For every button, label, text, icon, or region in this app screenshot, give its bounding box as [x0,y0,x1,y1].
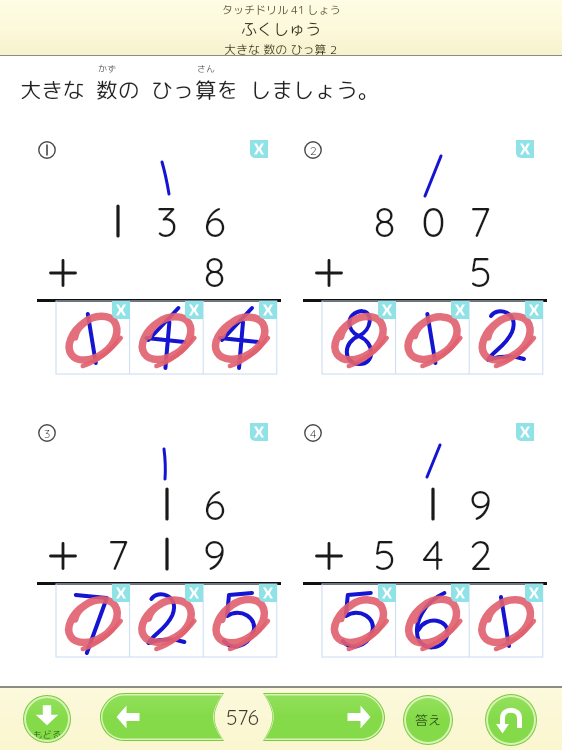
staticText: 2 [469,529,492,580]
button[interactable]: Next page [263,693,385,741]
staticText: 5 [373,529,396,580]
staticText: を [217,75,239,105]
staticText: 7 [107,529,129,580]
staticText: 6 [203,479,226,530]
button[interactable]: Clear this digit [185,301,203,319]
staticText: 9 [469,479,492,530]
button[interactable]: Clear this digit [250,423,268,441]
button[interactable]: Clear this digit [525,584,543,602]
staticText: ひっ [151,75,195,105]
staticText: 答え [415,711,442,729]
staticText: の [118,75,140,105]
staticText: 算 [195,75,217,105]
button[interactable]: Clear this digit [112,301,130,319]
staticText: ふくしゅう [241,18,322,40]
staticText: しましょう。 [250,75,380,105]
staticText: 2 [310,143,317,158]
button[interactable]: Show answer [406,698,450,742]
staticText: 大きな [20,75,85,105]
staticText: 0 [421,196,446,247]
button[interactable]: Clear this digit [516,140,534,158]
button[interactable]: Redo [488,697,534,743]
button[interactable]: Clear this digit [259,301,277,319]
staticText: 4 [422,529,444,580]
button[interactable]: Clear this digit [259,584,277,602]
button[interactable]: Clear this digit [516,423,534,441]
button[interactable]: Clear this digit [112,584,130,602]
button[interactable]: Clear this digit [185,584,203,602]
staticText: 数 [96,75,118,105]
button[interactable]: Clear this digit [378,584,396,602]
button[interactable]: Clear this digit [525,301,543,319]
button[interactable]: Clear this digit [378,301,396,319]
staticText: 3 [44,426,51,441]
staticText: 5 [469,246,492,297]
staticText: かず [98,62,117,75]
staticText: 6 [203,196,226,247]
staticText: タッチドリル 41 しょう [222,2,341,17]
button[interactable]: Clear this digit [451,301,469,319]
staticText: 3 [156,196,178,247]
button[interactable]: Clear this digit [451,584,469,602]
staticText: 7 [469,196,491,247]
button[interactable]: Clear this digit [250,140,268,158]
button[interactable]: Back [26,698,68,740]
staticText: 8 [373,196,396,247]
staticText: 大きな 数の ひっ算 2 [224,41,338,58]
staticText: 4 [310,426,317,441]
staticText: 9 [203,529,226,580]
staticText: もどる [33,728,62,740]
staticText: さん [197,62,216,75]
staticText: 576 [226,704,259,730]
button[interactable]: Previous page [100,693,224,741]
staticText: 8 [203,246,226,297]
